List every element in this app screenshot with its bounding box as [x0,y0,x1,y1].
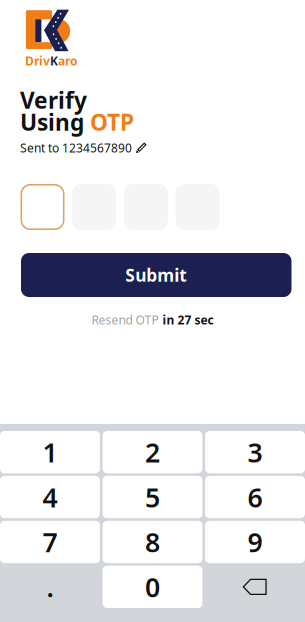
staticText: in 27 sec [162,312,213,328]
staticText: 8 [145,524,160,560]
staticText: K [50,53,58,69]
staticText: 1 [42,434,57,470]
button[interactable]: . [0,566,100,608]
staticText: . [46,569,53,604]
button[interactable]: 3 [205,431,305,473]
button[interactable]: 7 [0,521,100,563]
button[interactable]: Delete [205,566,305,608]
button[interactable]: 6 [205,476,305,518]
staticText: Resend OTP [91,312,158,328]
button[interactable]: Submit [21,253,291,297]
staticText: Driv [25,53,50,69]
staticText: 5 [145,479,160,515]
staticText: Submit [125,263,187,286]
button[interactable]: 1 [0,431,100,473]
staticText: 0 [145,569,160,604]
staticText: 9 [247,524,262,560]
staticText: 7 [42,524,57,560]
staticText: Verify [20,85,87,115]
staticText: 4 [42,479,57,515]
staticText: 6 [247,479,262,515]
staticText: Using [20,107,84,137]
button[interactable]: 8 [102,521,202,563]
button[interactable]: 2 [102,431,202,473]
button[interactable]: 0 [102,566,202,608]
staticText: 2 [145,434,160,470]
staticText: Sent to 1234567890 [20,140,132,156]
staticText: OTP [90,107,134,137]
button[interactable]: 9 [205,521,305,563]
staticText: 3 [247,434,262,470]
staticText: aro [58,53,78,69]
button[interactable]: 5 [102,476,202,518]
button[interactable]: OTP digit [20,184,64,230]
button[interactable]: 4 [0,476,100,518]
